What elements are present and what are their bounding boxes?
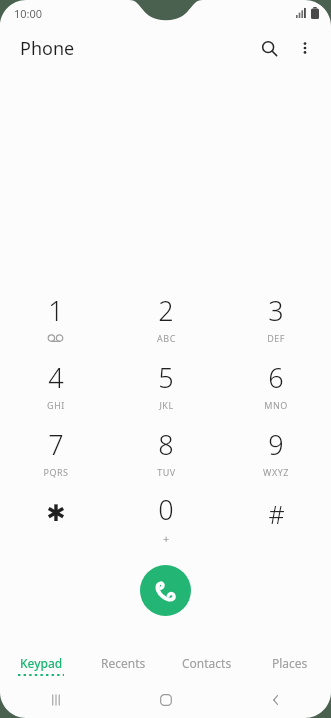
staticText: # [268, 497, 285, 531]
staticText: JKL [159, 399, 174, 411]
button[interactable]: 6 [221, 351, 331, 418]
staticText: 5 [158, 359, 174, 396]
staticText: 10:00 [14, 6, 43, 21]
button[interactable]: 0 [111, 485, 221, 552]
button[interactable]: # [221, 485, 331, 552]
staticText: Places [272, 655, 308, 671]
staticText: Phone [20, 36, 75, 61]
staticText: GHI [47, 399, 65, 411]
staticText: 7 [48, 426, 64, 463]
staticText: 4 [48, 359, 64, 396]
staticText: Contacts [182, 655, 232, 671]
staticText: 8 [158, 426, 174, 463]
staticText: PQRS [43, 466, 69, 478]
staticText: ✱ [46, 500, 66, 527]
staticText: DEF [267, 332, 285, 344]
staticText: WXYZ [263, 466, 289, 478]
button[interactable]: Back [221, 682, 331, 718]
button[interactable]: 3 [221, 284, 331, 351]
staticText: 2 [158, 292, 174, 329]
button[interactable]: 1 [0, 284, 111, 351]
button[interactable]: 5 [111, 351, 221, 418]
button[interactable]: Places [248, 648, 331, 682]
staticText: Keypad [20, 655, 63, 671]
staticText: ABC [157, 332, 176, 344]
button[interactable]: Recents [0, 682, 111, 718]
button[interactable]: 8 [111, 418, 221, 485]
staticText: 0 [158, 491, 174, 528]
staticText: 9 [268, 426, 284, 463]
button[interactable]: Recents [82, 648, 165, 682]
staticText: TUV [157, 466, 176, 478]
staticText: + [163, 531, 170, 546]
button[interactable]: Search [251, 30, 287, 66]
button[interactable]: More options [287, 30, 323, 66]
staticText: 6 [268, 359, 284, 396]
button[interactable]: 4 [0, 351, 111, 418]
staticText: Recents [101, 655, 146, 671]
button[interactable]: Call [140, 565, 191, 616]
button[interactable]: Contacts [165, 648, 248, 682]
button[interactable]: Keypad [0, 648, 82, 682]
staticText: MNO [264, 399, 288, 411]
button[interactable]: ✱ [0, 485, 111, 552]
button[interactable]: Home [111, 682, 221, 718]
button[interactable]: 2 [111, 284, 221, 351]
button[interactable]: 7 [0, 418, 111, 485]
button[interactable]: 9 [221, 418, 331, 485]
staticText: 3 [268, 292, 284, 329]
staticText: 1 [48, 292, 64, 329]
